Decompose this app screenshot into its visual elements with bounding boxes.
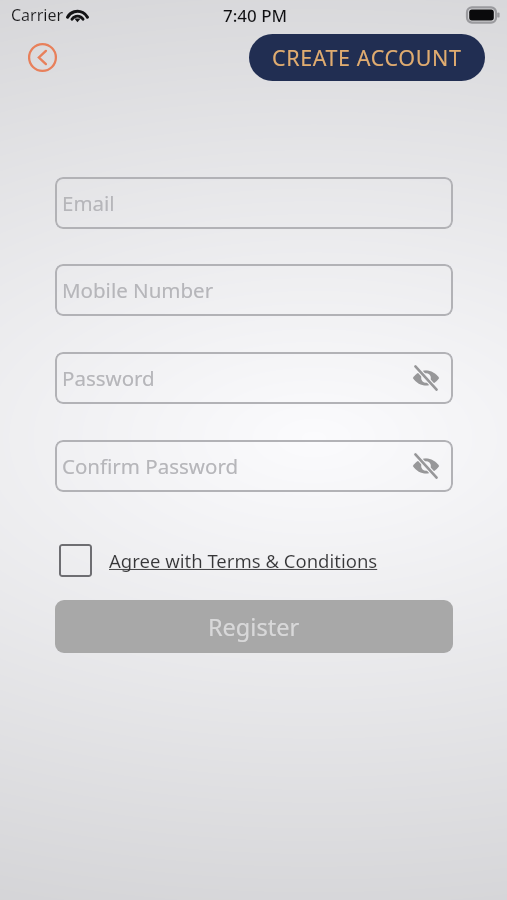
staticText: Confirm Password <box>62 452 239 480</box>
button[interactable]: Mobile Number <box>55 264 453 316</box>
button[interactable]: CREATE ACCOUNT <box>249 34 485 81</box>
button[interactable]: Back <box>24 39 61 76</box>
staticText: CREATE ACCOUNT <box>272 43 462 72</box>
staticText: Agree with Terms & Conditions <box>109 548 378 573</box>
button[interactable]: Register <box>55 600 453 653</box>
staticText: Mobile Number <box>62 276 214 304</box>
button[interactable]: Password <box>55 352 453 404</box>
staticText: Register <box>208 611 300 643</box>
button[interactable]: Email <box>55 177 453 229</box>
staticText: Email <box>62 189 115 217</box>
staticText: Carrier <box>11 4 64 26</box>
button[interactable]: Confirm Password <box>55 440 453 492</box>
button[interactable]: Agree with Terms & Conditions <box>59 538 378 582</box>
staticText: 7:40 PM <box>223 4 288 27</box>
staticText: Password <box>62 364 155 392</box>
